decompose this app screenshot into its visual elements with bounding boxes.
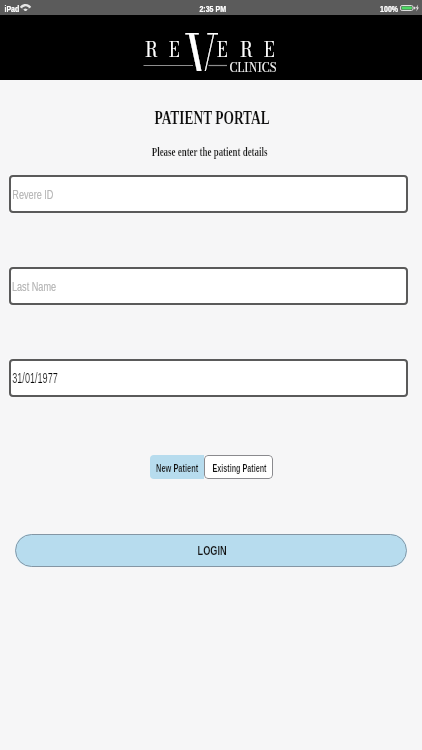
staticText: LOGIN xyxy=(198,543,227,558)
button[interactable]: Revere ID xyxy=(9,175,408,213)
other: Battery 100 percent charging xyxy=(400,5,416,11)
staticText: CLINICS xyxy=(229,58,276,76)
staticText: E xyxy=(217,34,228,65)
button[interactable]: Existing Patient xyxy=(204,455,273,479)
staticText: E xyxy=(264,34,275,65)
button[interactable]: 31/01/1977 xyxy=(9,359,408,397)
staticText: V xyxy=(184,6,220,71)
staticText: Last Name xyxy=(12,280,57,293)
staticText: iPad xyxy=(4,3,20,14)
staticText: Existing Patient xyxy=(212,463,267,475)
staticText: New Patient xyxy=(156,463,199,475)
staticText: 2:35 PM xyxy=(199,3,226,14)
button[interactable]: New Patient xyxy=(150,455,204,479)
staticText: 100% xyxy=(380,3,399,14)
staticText: E xyxy=(169,34,180,65)
staticText: 31/01/1977 xyxy=(12,370,58,386)
button[interactable]: LOGIN xyxy=(15,534,407,567)
staticText: R xyxy=(145,34,158,65)
button[interactable]: Last Name xyxy=(9,267,408,305)
staticText: Revere ID xyxy=(12,188,54,201)
staticText: Please enter the patient details xyxy=(152,145,268,159)
staticText: R xyxy=(240,34,253,65)
staticText: PATIENT PORTAL xyxy=(154,108,270,128)
other: Wi-Fi xyxy=(22,5,29,11)
